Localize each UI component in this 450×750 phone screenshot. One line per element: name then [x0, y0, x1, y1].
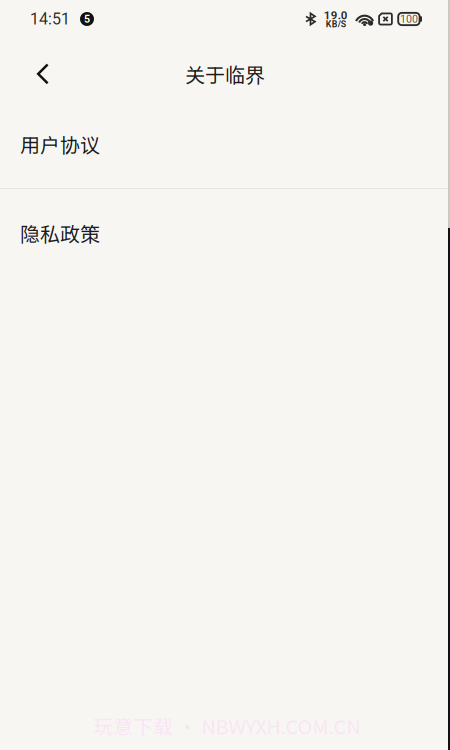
staticText: 隐私政策	[20, 218, 100, 247]
staticText: 14:51	[30, 10, 70, 28]
staticText: 关于临界	[185, 59, 265, 88]
button[interactable]: 用户协议	[0, 100, 450, 188]
staticText: 100	[400, 13, 418, 25]
staticText: 5	[84, 13, 90, 25]
staticText: 用户协议	[20, 129, 100, 158]
staticText: KB/S	[326, 19, 346, 29]
staticText: 19.0	[324, 9, 348, 22]
button[interactable]: 隐私政策	[0, 189, 450, 277]
staticText: 玩意下载 · NBWYXH.COM.CN	[93, 711, 360, 740]
button[interactable]: Back	[20, 51, 66, 97]
